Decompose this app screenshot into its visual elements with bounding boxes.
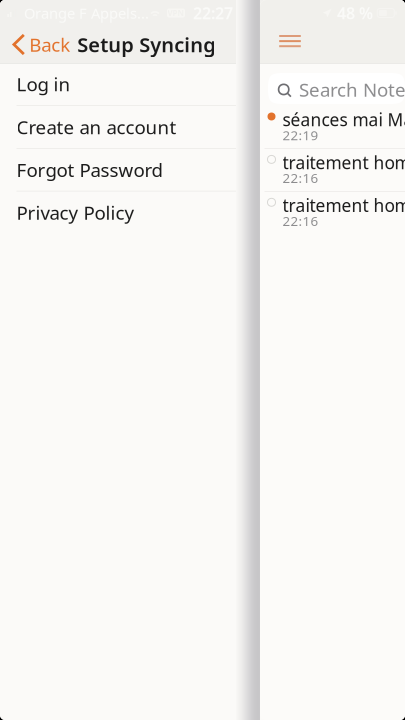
button[interactable]: Privacy Policy — [0, 191, 405, 234]
staticText: 22:19 — [282, 126, 318, 144]
staticText: traitement homéo s — [282, 194, 405, 217]
staticText: 22:16 — [282, 212, 318, 230]
staticText: Log in — [16, 72, 70, 96]
button[interactable]: séances mai March — [260, 106, 405, 149]
staticText: Search Notes — [299, 77, 405, 102]
staticText: Forgot Password — [16, 157, 162, 182]
button[interactable]: traitement homéo c — [260, 149, 405, 192]
staticText: Orange F Appels... — [24, 3, 149, 23]
button[interactable]: Back — [0, 26, 74, 63]
staticText: 22:27 — [193, 2, 233, 24]
button[interactable]: Menu — [272, 26, 308, 63]
button[interactable]: traitement homéo s — [260, 192, 405, 235]
staticText: traitement homéo c — [282, 151, 405, 174]
button[interactable]: Log in — [0, 63, 405, 106]
staticText: Back — [29, 32, 70, 57]
staticText: Create an account — [16, 114, 176, 139]
staticText: 22:16 — [282, 169, 318, 187]
button[interactable]: Forgot Password — [0, 149, 405, 191]
staticText: Setup Syncing — [77, 31, 216, 58]
button[interactable]: Search Notes — [268, 73, 405, 104]
button[interactable]: Create an account — [0, 106, 405, 149]
staticText: séances mai March — [282, 108, 405, 131]
staticText: 48 % — [337, 2, 373, 24]
staticText: Privacy Policy — [16, 200, 134, 225]
